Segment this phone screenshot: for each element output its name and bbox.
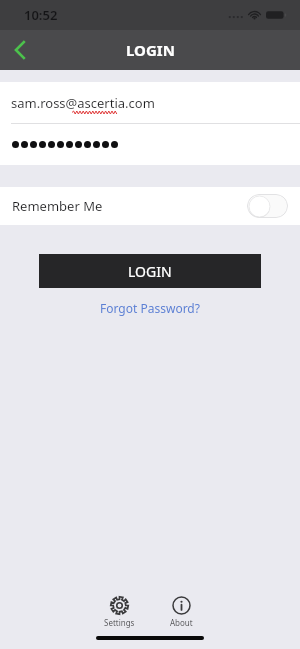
button[interactable]: LOGIN xyxy=(39,254,261,288)
button[interactable]: Remember Me xyxy=(0,187,300,225)
staticText: Remember Me xyxy=(12,197,103,215)
staticText: Forgot Password? xyxy=(100,300,200,316)
button[interactable]: About xyxy=(157,596,205,628)
staticText: About xyxy=(170,617,193,628)
button[interactable]: sam.ross@ascertia.com xyxy=(0,82,300,123)
button[interactable] xyxy=(0,124,300,165)
button[interactable]: Remember Me toggle xyxy=(247,194,288,218)
button[interactable]: Settings xyxy=(95,596,143,628)
button[interactable]: Back xyxy=(0,30,40,70)
staticText: LOGIN xyxy=(128,262,172,281)
button[interactable]: Forgot Password? xyxy=(92,298,208,318)
staticText: Settings xyxy=(104,617,135,628)
staticText: LOGIN xyxy=(126,40,175,60)
staticText: 10:52 xyxy=(24,6,58,24)
staticText: sam.ross@ascertia.com xyxy=(11,94,155,112)
